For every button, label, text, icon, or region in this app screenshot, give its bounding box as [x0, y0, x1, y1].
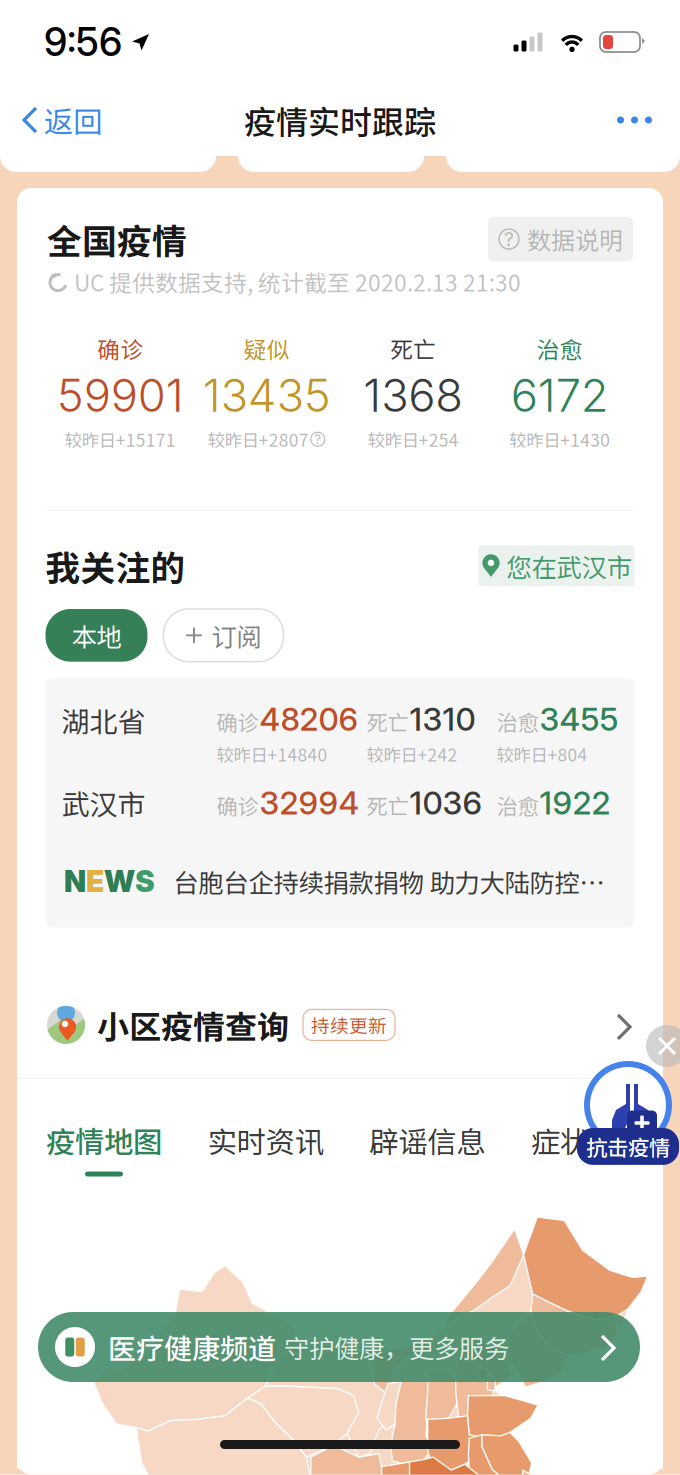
- staticText: UC 提供数据支持, 统计截至 2020.2.13 21:30: [74, 265, 521, 298]
- staticText: 48206: [259, 700, 358, 738]
- staticText: 武汉市: [61, 782, 145, 823]
- staticText: 较昨日+15171: [65, 427, 176, 452]
- button[interactable]: More options: [617, 98, 680, 141]
- staticText: 确诊: [216, 790, 258, 821]
- staticText: 守护健康，更多服务: [284, 1329, 509, 1365]
- staticText: 较昨日+1430: [509, 427, 610, 452]
- staticText: 死亡: [366, 790, 408, 821]
- staticText: 1036: [409, 783, 482, 822]
- staticText: 较昨日+804: [496, 741, 587, 766]
- staticText: 持续更新: [311, 1011, 387, 1038]
- staticText: 32994: [259, 783, 359, 822]
- button[interactable]: 订阅: [163, 609, 283, 662]
- staticText: 抗击疫情: [586, 1131, 670, 1162]
- staticText: 治愈: [496, 790, 538, 821]
- staticText: 1310: [409, 700, 475, 738]
- staticText: 台胞台企持续捐款捐物 助力大陆防控…: [173, 863, 604, 900]
- staticText: 9:56: [44, 19, 122, 65]
- staticText: 确诊: [216, 706, 258, 737]
- staticText: 疫情实时跟踪: [244, 97, 436, 143]
- staticText: 3455: [539, 700, 618, 738]
- button[interactable]: 疫情地图: [46, 1119, 162, 1187]
- staticText: S: [135, 864, 155, 899]
- staticText: 返回: [44, 99, 102, 141]
- staticText: ?: [314, 431, 321, 447]
- staticText: 较昨日+2807: [208, 427, 309, 452]
- button[interactable]: 辟谣信息: [369, 1119, 485, 1187]
- staticText: 医疗健康频道: [108, 1327, 276, 1367]
- button[interactable]: ?: [488, 217, 633, 261]
- button[interactable]: 小区疫情查询: [17, 966, 663, 1078]
- staticText: 死亡: [366, 706, 408, 737]
- button[interactable]: 医疗健康频道: [38, 1312, 640, 1382]
- staticText: 本地: [71, 617, 121, 654]
- staticText: 死亡: [390, 332, 436, 365]
- staticText: ?: [504, 227, 514, 251]
- staticText: 1922: [539, 783, 610, 822]
- staticText: 湖北省: [61, 700, 145, 740]
- button[interactable]: 实时资讯: [208, 1119, 324, 1187]
- staticText: 症状自查: [531, 1119, 647, 1162]
- staticText: 治愈: [537, 332, 583, 365]
- staticText: 实时资讯: [208, 1119, 324, 1162]
- staticText: 59901: [57, 368, 184, 423]
- staticText: 较昨日+242: [366, 741, 457, 766]
- button[interactable]: 症状自查: [531, 1119, 647, 1187]
- staticText: 1368: [363, 368, 463, 423]
- button[interactable]: Close: [645, 1024, 680, 1068]
- staticText: 13435: [203, 368, 331, 423]
- staticText: 您在武汉市: [506, 547, 631, 584]
- staticText: 数据说明: [527, 222, 623, 256]
- staticText: 疫情地图: [46, 1119, 162, 1162]
- button[interactable]: 您在武汉市: [478, 545, 634, 586]
- button[interactable]: 抗击疫情: [585, 1010, 671, 1170]
- staticText: E: [86, 864, 104, 899]
- staticText: 较昨日+254: [368, 427, 459, 452]
- staticText: 订阅: [211, 617, 261, 654]
- staticText: W: [104, 864, 135, 899]
- staticText: 辟谣信息: [369, 1119, 485, 1162]
- staticText: 我关注的: [45, 541, 185, 591]
- staticText: N: [64, 864, 86, 899]
- staticText: 小区疫情查询: [97, 1002, 289, 1048]
- staticText: 治愈: [496, 706, 538, 737]
- staticText: 确诊: [97, 332, 143, 365]
- staticText: 6172: [511, 368, 609, 423]
- staticText: 全国疫情: [47, 214, 187, 264]
- staticText: 较昨日+14840: [216, 741, 327, 766]
- button[interactable]: N: [61, 823, 618, 928]
- staticText: 疑似: [244, 332, 290, 365]
- button[interactable]: 返回: [0, 89, 102, 151]
- button[interactable]: 本地: [45, 609, 147, 662]
